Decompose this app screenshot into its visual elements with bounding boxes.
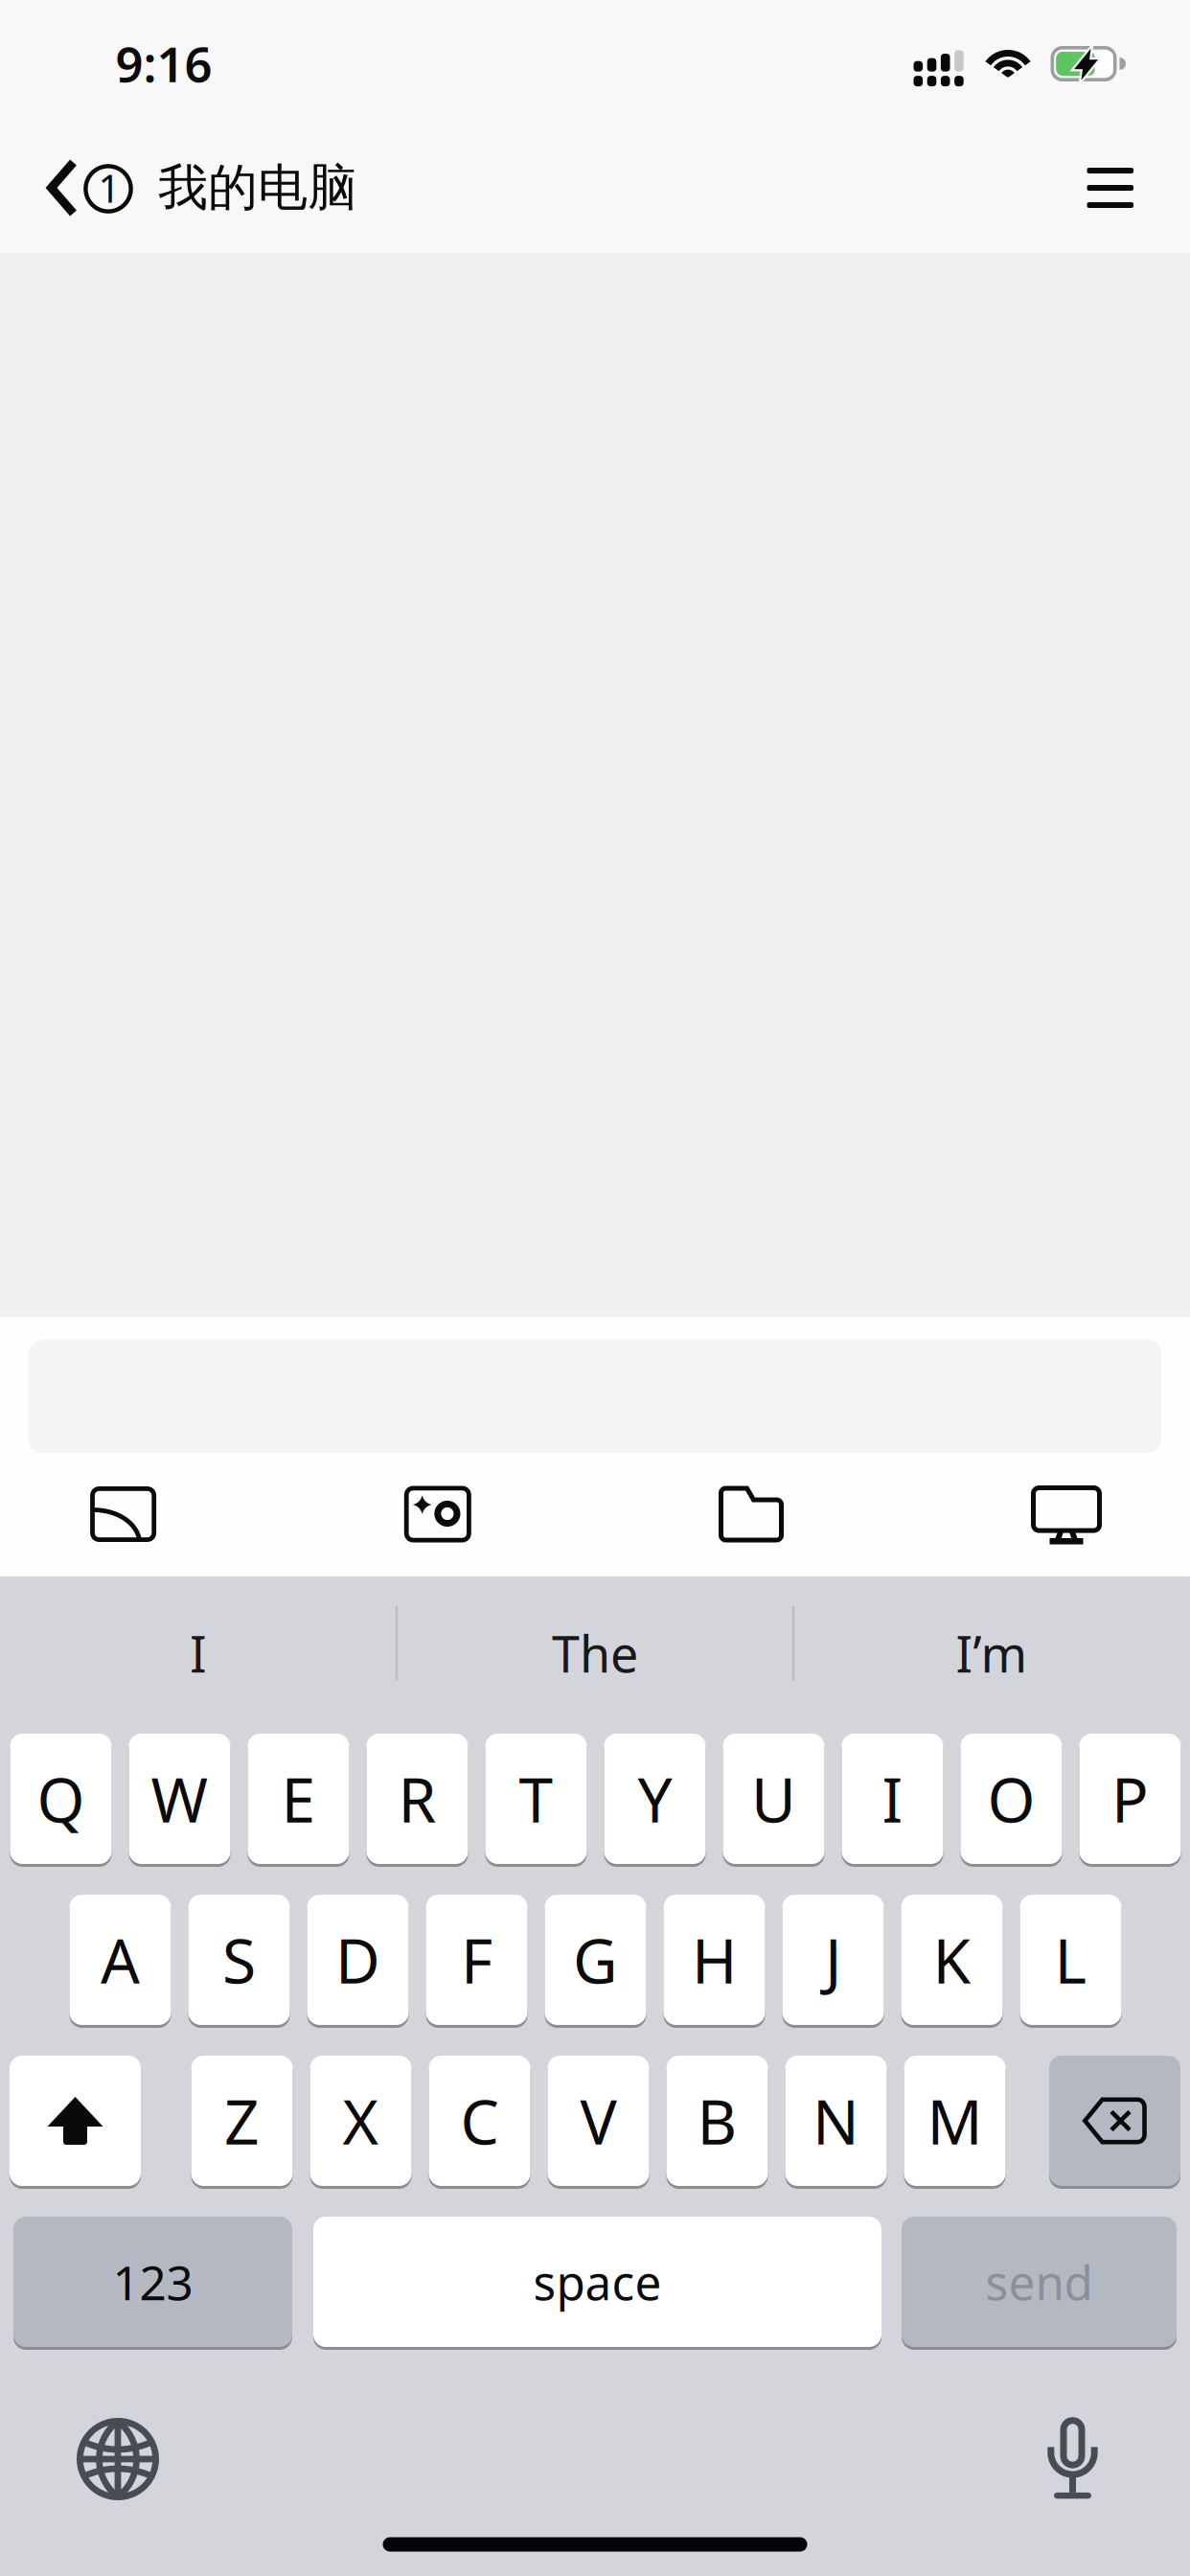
staticText: W [151, 1758, 208, 1840]
button[interactable]: D [307, 1895, 409, 2025]
staticText: C [460, 2080, 499, 2162]
button[interactable]: I [842, 1734, 943, 1864]
staticText: V [580, 2080, 617, 2162]
button[interactable]: K [901, 1895, 1003, 2025]
staticText: 我的电脑 [158, 157, 357, 218]
button[interactable]: O [961, 1734, 1062, 1864]
button[interactable]: Files [684, 1461, 818, 1567]
staticText: X [343, 2080, 379, 2162]
button[interactable]: space [313, 2217, 881, 2347]
button[interactable]: E [248, 1734, 349, 1864]
staticText: N [812, 2080, 859, 2162]
button[interactable]: Delete [1049, 2056, 1180, 2186]
staticText: K [933, 1919, 971, 2001]
button[interactable]: I’m [829, 1596, 1155, 1711]
button[interactable]: H [664, 1895, 765, 2025]
button[interactable]: N [785, 2056, 887, 2186]
button[interactable]: P [1079, 1734, 1181, 1864]
staticText: send [985, 2250, 1093, 2313]
button[interactable]: R [366, 1734, 468, 1864]
staticText: T [519, 1758, 553, 1840]
button[interactable]: G [545, 1895, 646, 2025]
button[interactable]: B [666, 2056, 768, 2186]
staticText: Z [224, 2080, 260, 2162]
staticText: P [1111, 1758, 1149, 1840]
staticText: D [335, 1919, 380, 2001]
button[interactable]: send [902, 2217, 1177, 2347]
button[interactable]: T [485, 1734, 587, 1864]
staticText: H [692, 1919, 737, 2001]
staticText: The [552, 1620, 638, 1686]
staticText: M [927, 2080, 983, 2162]
staticText: space [533, 2250, 662, 2313]
button[interactable]: Q [10, 1734, 112, 1864]
button[interactable]: 123 [13, 2217, 292, 2347]
button[interactable]: Back [0, 126, 153, 253]
button[interactable]: A [69, 1895, 171, 2025]
staticText: Y [638, 1758, 672, 1840]
staticText: J [825, 1919, 841, 2001]
staticText: A [101, 1919, 140, 2001]
button[interactable]: C [429, 2056, 530, 2186]
staticText: S [222, 1919, 256, 2001]
staticText: 123 [113, 2250, 193, 2313]
staticText: I [190, 1620, 207, 1686]
staticText: O [987, 1758, 1035, 1840]
staticText: G [573, 1919, 618, 2001]
button[interactable]: W [129, 1734, 230, 1864]
staticText: 1 [98, 162, 120, 213]
button[interactable]: My Computer [999, 1463, 1133, 1569]
button[interactable]: Next keyboard [60, 2402, 175, 2517]
button[interactable]: Menu [1059, 136, 1162, 240]
button[interactable]: I [35, 1596, 361, 1711]
button[interactable]: The [432, 1596, 758, 1711]
staticText: 9:16 [115, 31, 212, 96]
staticText: L [1054, 1919, 1087, 2001]
staticText: F [461, 1919, 492, 2001]
staticText: U [751, 1758, 796, 1840]
button[interactable]: Y [604, 1734, 706, 1864]
button[interactable]: Photos [56, 1461, 190, 1567]
button[interactable]: Camera [371, 1461, 505, 1567]
staticText: E [281, 1758, 316, 1840]
button[interactable]: S [188, 1895, 290, 2025]
button[interactable]: Shift [10, 2056, 141, 2186]
button[interactable]: J [782, 1895, 884, 2025]
staticText: R [398, 1758, 436, 1840]
button[interactable]: V [548, 2056, 649, 2186]
button[interactable]: U [723, 1734, 824, 1864]
staticText: B [697, 2080, 737, 2162]
button[interactable]: L [1020, 1895, 1121, 2025]
button[interactable]: M [904, 2056, 1006, 2186]
staticText: I [882, 1758, 903, 1840]
button[interactable]: Dictate [1015, 2400, 1130, 2515]
staticText: Q [37, 1758, 85, 1840]
button[interactable]: X [310, 2056, 412, 2186]
button[interactable]: F [426, 1895, 527, 2025]
button[interactable]: Z [191, 2056, 293, 2186]
staticText: I’m [956, 1620, 1028, 1686]
